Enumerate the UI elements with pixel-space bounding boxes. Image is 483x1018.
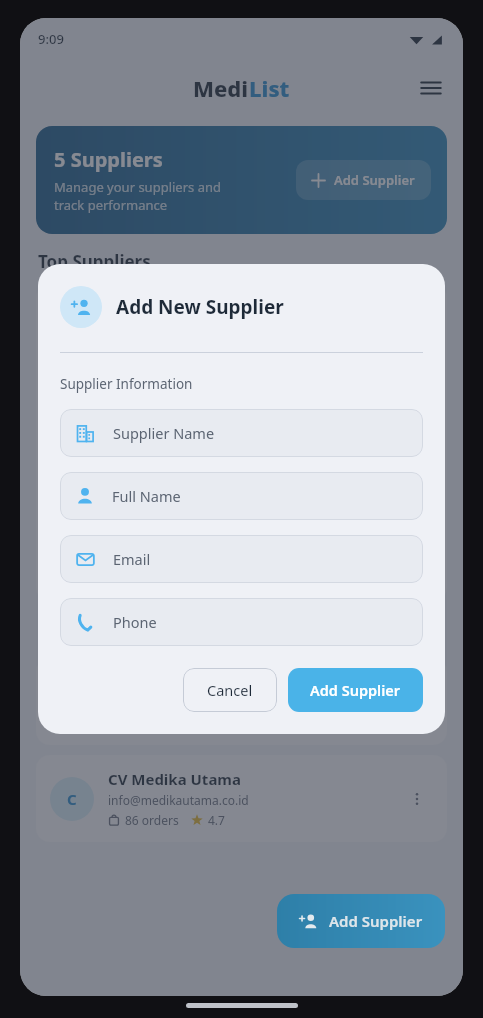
staticText: Top Suppliers (38, 250, 151, 273)
button[interactable]: Sort by (365, 617, 445, 644)
button[interactable] (36, 283, 447, 603)
staticText: Supplier Information (60, 375, 193, 393)
staticText: Full Name (112, 486, 181, 506)
button[interactable]: Phone (60, 598, 423, 646)
staticText: 4.7 (208, 812, 225, 828)
staticText: Add Supplier (329, 911, 423, 931)
staticText: 9:09 (38, 30, 64, 48)
staticText: C (67, 789, 77, 809)
button[interactable]: Add Supplier (288, 668, 423, 712)
staticText: Supplier Name (113, 423, 215, 443)
button[interactable]: Email (60, 535, 423, 583)
button[interactable]: Supplier Name (60, 409, 423, 457)
button[interactable]: Add Supplier (296, 160, 431, 200)
staticText: info@medikautama.co.id (108, 792, 249, 808)
staticText: Add Supplier (334, 171, 415, 189)
staticText: Add Supplier (310, 680, 401, 700)
staticText: Medi (193, 73, 249, 103)
staticText: 86 orders (125, 812, 179, 828)
staticText: All Suppliers (38, 619, 143, 642)
staticText: track performance (54, 196, 168, 214)
button[interactable]: P (36, 658, 447, 745)
button[interactable]: C (36, 755, 447, 842)
button[interactable]: Full Name (60, 472, 423, 520)
staticText: Cancel (207, 680, 253, 700)
staticText: Phone (113, 612, 157, 632)
button[interactable]: More options (401, 783, 433, 815)
staticText: Sort by (394, 621, 441, 640)
button[interactable]: Cancel (183, 668, 277, 712)
staticText: PT Kimia Farma (108, 672, 224, 692)
button[interactable]: More options (401, 686, 433, 718)
staticText: Add New Supplier (116, 294, 284, 320)
button[interactable]: Add Supplier (277, 894, 445, 948)
staticText: Manage your suppliers and (54, 178, 221, 196)
staticText: 5 Suppliers (54, 146, 163, 173)
button[interactable]: Menu (411, 68, 451, 108)
staticText: CV Medika Utama (108, 769, 241, 789)
staticText: procurement@kimiafarma.co.id (108, 695, 287, 711)
staticText: Email (113, 549, 151, 569)
staticText: List (249, 73, 290, 103)
